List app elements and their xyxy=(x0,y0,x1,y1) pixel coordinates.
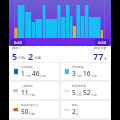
staticText: % xyxy=(104,56,107,61)
staticText: 睡眠分數 xyxy=(94,46,107,50)
staticText: 淺度睡眠 xyxy=(72,65,84,69)
staticText: 分鐘 xyxy=(34,56,42,61)
staticText: 深度睡眠 xyxy=(21,65,33,69)
staticText: 2 xyxy=(28,50,34,61)
staticText: 小時 xyxy=(18,56,26,61)
staticText: 睡眠呼吸中止 xyxy=(21,103,39,107)
staticText: 分鐘 xyxy=(29,112,35,116)
staticText: 77 xyxy=(93,50,104,61)
staticText: 小時 xyxy=(76,74,82,78)
staticText: 5 xyxy=(12,50,18,61)
staticText: 5 xyxy=(72,88,76,97)
staticText: 3 xyxy=(72,69,76,78)
staticText: 16 xyxy=(83,69,91,78)
button[interactable]: 入睡時間 xyxy=(10,82,59,99)
staticText: 躺床總時長 xyxy=(72,84,87,88)
staticText: 小時 xyxy=(76,93,82,97)
staticText: 52 xyxy=(83,88,91,97)
staticText: 46 xyxy=(32,69,40,78)
button[interactable]: 淺度睡眠 xyxy=(61,63,110,80)
staticText: 50 xyxy=(21,107,29,116)
button[interactable]: 睡眠呼吸中止 xyxy=(10,101,59,118)
staticText: 次 xyxy=(76,112,79,116)
staticText: 醒來 xyxy=(72,103,78,107)
button[interactable]: 醒來 xyxy=(61,101,110,118)
staticText: 11 xyxy=(21,88,29,97)
staticText: 分鐘 xyxy=(91,74,97,78)
staticText: 1 xyxy=(21,69,25,78)
staticText: 小時 xyxy=(25,74,31,78)
staticText: 2 xyxy=(72,107,76,116)
staticText: 入睡時間 xyxy=(21,84,33,88)
staticText: 6:40 xyxy=(14,40,22,45)
staticText: 分鐘 xyxy=(40,74,46,78)
staticText: 睡眠了 xyxy=(12,46,22,50)
button[interactable]: 深度睡眠 xyxy=(10,63,59,80)
staticText: 分鐘 xyxy=(29,93,35,97)
staticText: 6:34 xyxy=(98,40,106,45)
staticText: 分鐘 xyxy=(91,93,97,97)
button[interactable]: 躺床總時長 xyxy=(61,82,110,99)
